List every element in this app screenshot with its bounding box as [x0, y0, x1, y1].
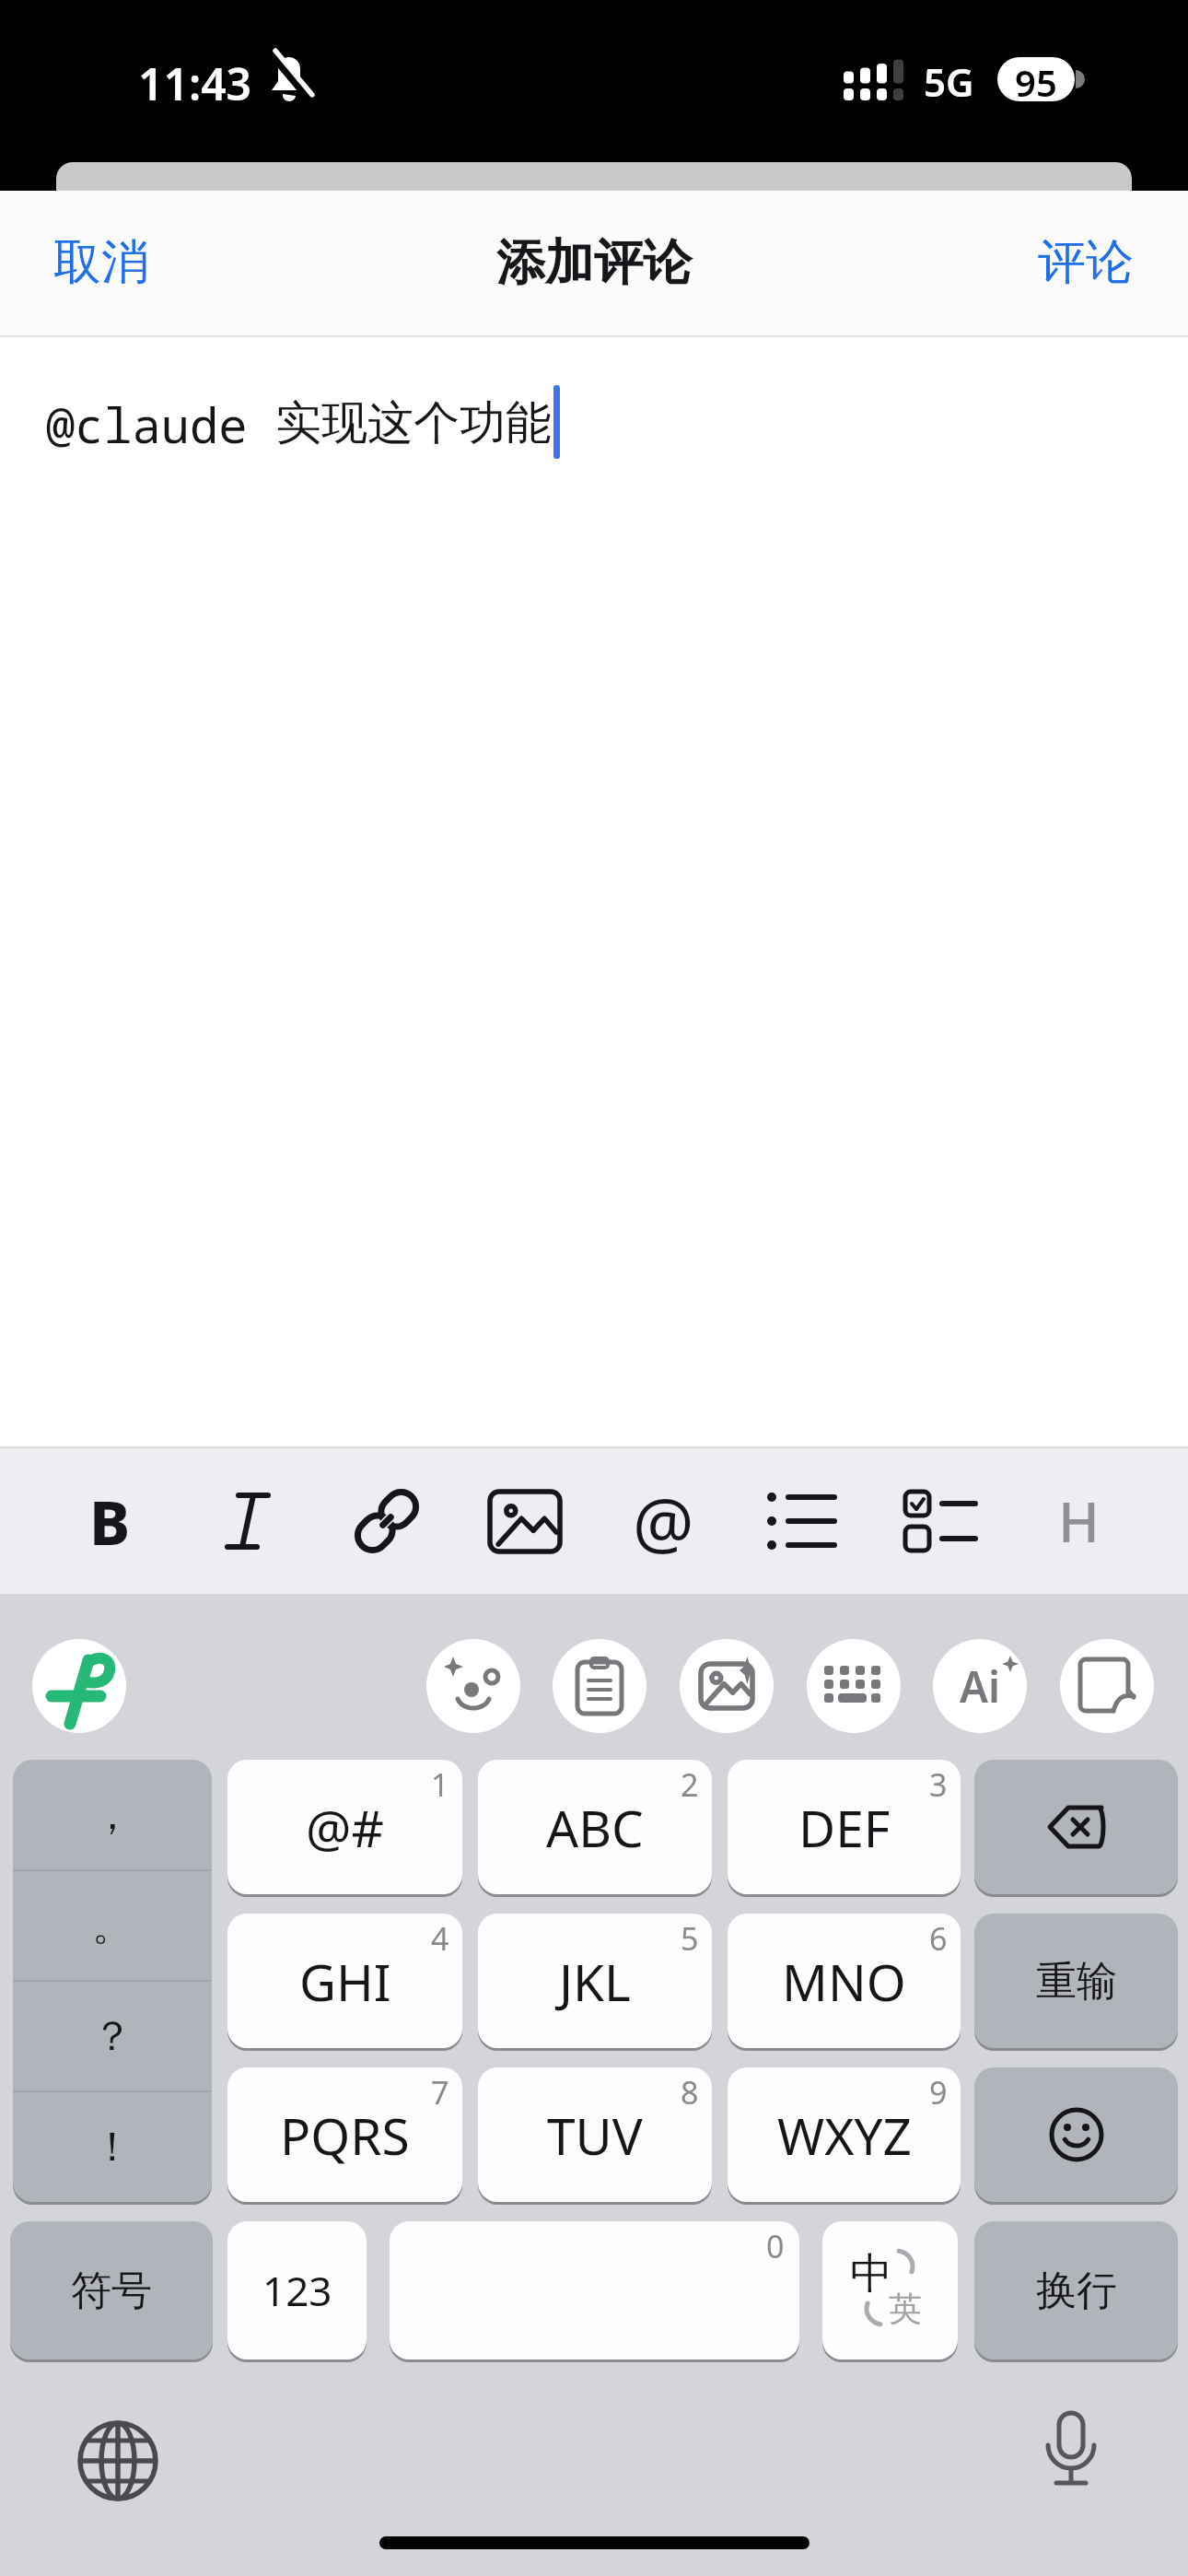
button[interactable]	[553, 1639, 646, 1733]
staticText: 7	[431, 2071, 449, 2113]
button[interactable]: 符号	[10, 2221, 213, 2359]
staticText: 换行	[1036, 2266, 1117, 2316]
button[interactable]: ABC	[478, 1760, 712, 1894]
button[interactable]: GHI	[227, 1914, 462, 2048]
staticText: 0	[766, 2225, 785, 2267]
button[interactable]: 中	[822, 2221, 958, 2359]
button[interactable]: ！	[13, 2091, 212, 2202]
staticText: 9	[929, 2071, 948, 2113]
staticText: @claude	[46, 392, 248, 457]
staticText: 符号	[71, 2266, 152, 2316]
button[interactable]	[680, 1639, 774, 1733]
staticText: ！	[92, 2122, 133, 2172]
staticText: WXYZ	[777, 2101, 912, 2170]
button[interactable]	[32, 1639, 126, 1733]
staticText: PQRS	[280, 2101, 410, 2170]
staticText: 3	[929, 1763, 948, 1806]
button[interactable]	[426, 1639, 520, 1733]
staticText: @#	[306, 1793, 384, 1862]
staticText: 2	[681, 1763, 699, 1806]
staticText: 中	[850, 2247, 892, 2301]
staticText: TUV	[547, 2101, 643, 2170]
button[interactable]	[13, 1760, 212, 2202]
button[interactable]: TUV	[478, 2067, 712, 2202]
staticText: GHI	[299, 1947, 391, 2016]
button[interactable]: 取消	[37, 221, 166, 304]
button[interactable]	[874, 1453, 1007, 1589]
staticText: 实现这个功能	[275, 394, 552, 452]
button[interactable]: @	[597, 1453, 729, 1589]
staticText: Ai	[960, 1657, 1000, 1715]
button[interactable]	[807, 1639, 901, 1733]
staticText: 11:43	[138, 53, 252, 113]
staticText: 123	[262, 2263, 332, 2318]
staticText: ？	[92, 2011, 133, 2062]
staticText: 5	[681, 1917, 699, 1960]
staticText: 6	[929, 1917, 948, 1960]
staticText: ，	[92, 1790, 133, 1841]
staticText: 95	[1015, 57, 1057, 101]
button[interactable]: MNO	[728, 1914, 961, 2048]
button[interactable]	[1060, 1639, 1154, 1733]
button[interactable]: 123	[227, 2221, 367, 2359]
staticText: @	[633, 1475, 694, 1568]
staticText: 评论	[1038, 232, 1134, 293]
button[interactable]: Ai	[933, 1639, 1027, 1733]
staticText: DEF	[798, 1793, 891, 1862]
staticText: 1	[431, 1763, 449, 1806]
staticText: ABC	[546, 1793, 644, 1862]
button[interactable]: JKL	[478, 1914, 712, 2048]
staticText: 添加评论	[496, 232, 692, 294]
button[interactable]: DEF	[728, 1760, 961, 1894]
staticText: 4	[431, 1917, 449, 1960]
staticText: 5G	[924, 55, 974, 108]
button[interactable]: ？	[13, 1981, 212, 2091]
button[interactable]: PQRS	[227, 2067, 462, 2202]
button[interactable]: 。	[13, 1870, 212, 1981]
button[interactable]: 评论	[1017, 221, 1155, 304]
staticText: 取消	[53, 232, 149, 293]
staticText: 。	[92, 1901, 133, 1951]
button[interactable]: ，	[13, 1760, 212, 1870]
button[interactable]	[735, 1453, 868, 1589]
staticText: MNO	[782, 1947, 906, 2016]
button[interactable]: 0	[390, 2221, 799, 2359]
button[interactable]: @#	[227, 1760, 462, 1894]
button[interactable]	[1016, 2396, 1126, 2507]
staticText: 重输	[1036, 1956, 1117, 2007]
button[interactable]: B	[43, 1453, 176, 1589]
button[interactable]: 换行	[974, 2221, 1178, 2359]
staticText: JKL	[559, 1947, 631, 2016]
button[interactable]: H	[1012, 1453, 1145, 1589]
button[interactable]: WXYZ	[728, 2067, 961, 2202]
button[interactable]	[459, 1453, 591, 1589]
button[interactable]	[181, 1453, 314, 1589]
staticText: H	[1058, 1483, 1100, 1559]
button[interactable]	[974, 1760, 1178, 1894]
button[interactable]: 重输	[974, 1914, 1178, 2048]
button[interactable]	[63, 2406, 173, 2516]
button[interactable]	[320, 1453, 453, 1589]
staticText: 8	[681, 2071, 699, 2113]
button[interactable]	[974, 2067, 1178, 2202]
staticText: 英	[889, 2288, 922, 2329]
staticText: B	[89, 1480, 131, 1563]
